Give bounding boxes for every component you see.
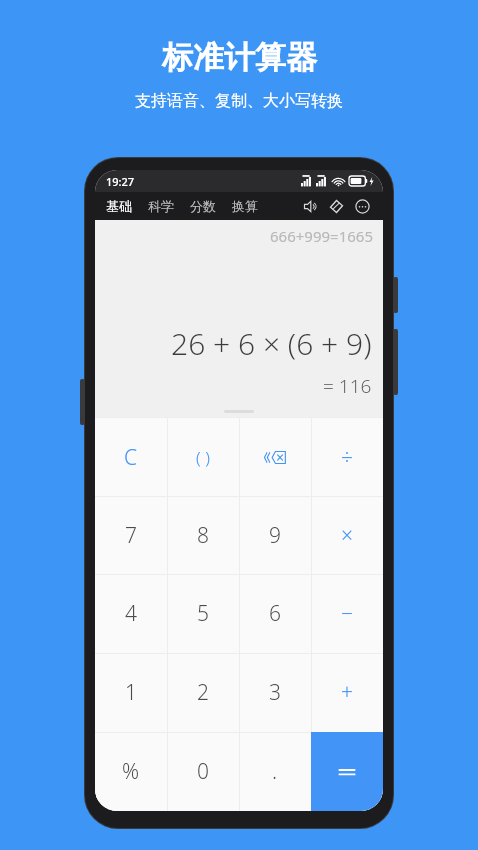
button[interactable]: % [95,732,167,811]
button[interactable]: . [239,732,311,811]
button[interactable]: ( ) [167,418,239,496]
button[interactable]: More options [349,193,375,219]
button[interactable]: Delete [239,418,311,496]
button[interactable]: 4 [95,574,167,653]
button[interactable]: − [311,574,383,653]
button[interactable]: Sound [297,193,323,219]
staticText: 7 [125,521,137,550]
button[interactable]: 基础 [105,196,133,216]
staticText: 0 [197,757,209,786]
staticText: 19:27 [106,174,135,189]
button[interactable]: 7 [95,496,167,574]
staticText: 6 [269,599,281,628]
staticText: 1 [125,678,137,707]
button[interactable]: ÷ [311,418,383,496]
staticText: 4 [125,599,137,628]
staticText: 26 + 6 × (6 + 9) [171,323,372,364]
button[interactable]: 2 [167,653,239,732]
staticText: 换算 [232,198,258,214]
staticText: 5 [197,599,209,628]
staticText: 标准计算器 [162,38,317,77]
staticText: 科学 [148,198,174,214]
button[interactable]: 5 [167,574,239,653]
staticText: = 116 [323,373,372,399]
button[interactable]: × [311,496,383,574]
button[interactable]: 科学 [147,196,175,216]
staticText: 2 [197,678,209,707]
button[interactable]: 1 [95,653,167,732]
button[interactable]: 6 [239,574,311,653]
button[interactable]: 0 [167,732,239,811]
button[interactable]: + [311,653,383,732]
button[interactable]: C [95,418,167,496]
staticText: C [124,443,138,472]
staticText: 9 [269,521,281,550]
staticText: × [341,521,353,550]
button[interactable]: 9 [239,496,311,574]
staticText: + [341,678,353,707]
staticText: % [122,757,140,786]
button[interactable]: 换算 [231,196,259,216]
button[interactable]: 3 [239,653,311,732]
staticText: . [272,757,278,786]
button[interactable]: 分数 [189,196,217,216]
staticText: 分数 [190,198,216,214]
staticText: ÷ [341,443,353,472]
staticText: − [341,599,353,628]
button[interactable]: Theme [323,193,349,219]
button[interactable] [311,732,383,811]
staticText: 基础 [106,198,132,214]
staticText: 8 [197,521,209,550]
staticText: 支持语音、复制、大小写转换 [135,91,343,111]
button[interactable]: 8 [167,496,239,574]
staticText: 3 [269,678,281,707]
staticText: 666+999=1665 [270,226,373,246]
staticText: ( ) [196,446,210,469]
